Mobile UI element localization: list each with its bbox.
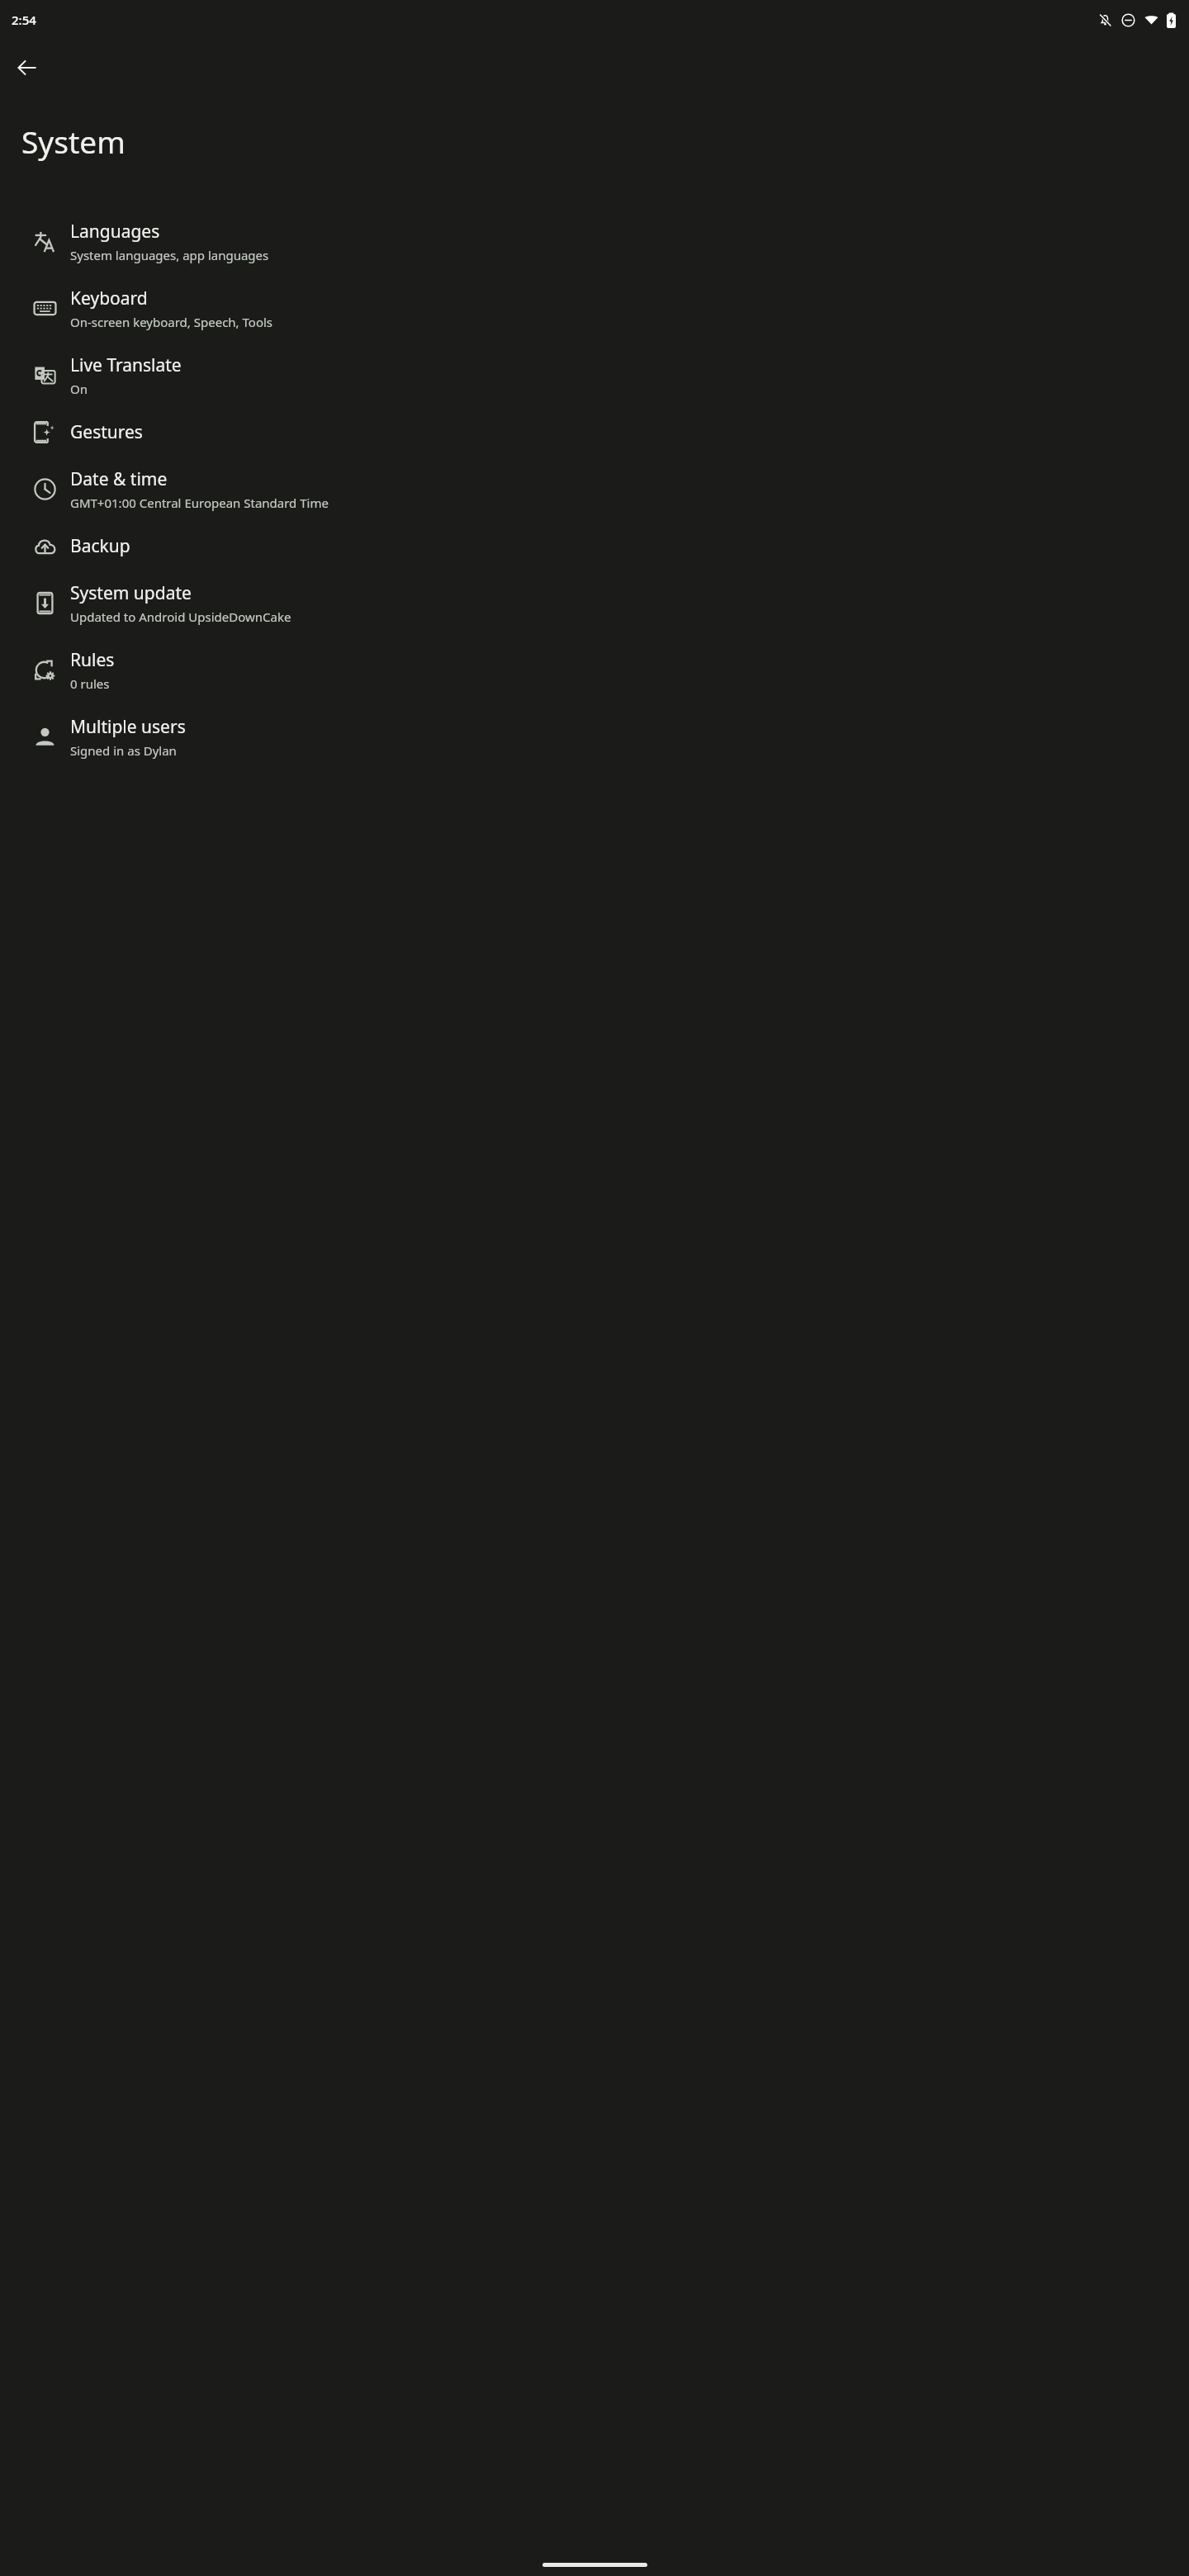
staticText: Signed in as Dylan [70,742,177,759]
button[interactable]: Languages [0,208,1189,275]
staticText: 2:54 [12,12,36,28]
staticText: Languages [70,220,160,244]
staticText: Updated to Android UpsideDownCake [70,608,291,625]
button[interactable]: System update [0,570,1189,637]
staticText: Backup [70,534,130,558]
button[interactable]: Backup [0,523,1189,570]
button[interactable]: Date & time [0,456,1189,523]
staticText: Date & time [70,467,168,491]
staticText: System [21,121,126,162]
staticText: Keyboard [70,286,148,310]
button[interactable]: Live Translate [0,342,1189,409]
staticText: GMT+01:00 Central European Standard Time [70,495,329,511]
staticText: Rules [70,648,115,672]
staticText: System languages, app languages [70,247,269,263]
staticText: 0 rules [70,675,110,692]
button[interactable]: Keyboard [0,275,1189,342]
staticText: On [70,381,88,397]
button[interactable]: Back [7,48,47,88]
staticText: Multiple users [70,715,186,739]
button[interactable]: Rules [0,637,1189,703]
button[interactable]: Multiple users [0,703,1189,770]
button[interactable]: Gestures [0,409,1189,456]
staticText: Gestures [70,420,143,444]
staticText: On-screen keyboard, Speech, Tools [70,314,273,330]
staticText: System update [70,581,192,605]
staticText: Live Translate [70,353,182,377]
